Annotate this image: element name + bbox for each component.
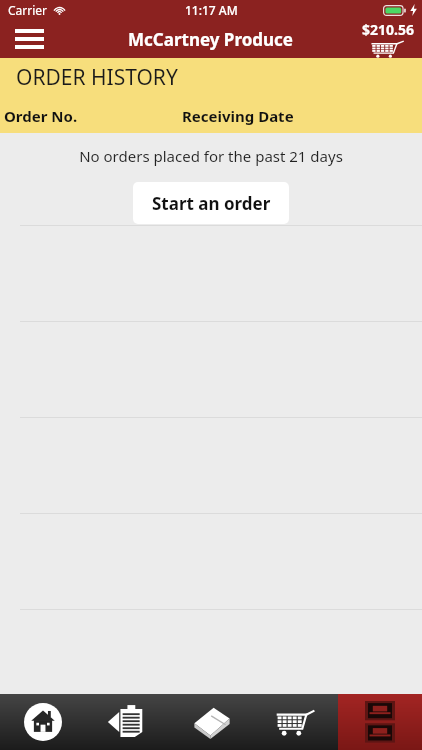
button[interactable]: Orders <box>85 694 170 750</box>
staticText: Order No. <box>4 106 78 126</box>
button[interactable]: Cart <box>254 694 338 750</box>
staticText: Carrier <box>8 2 48 18</box>
button[interactable]: Menu <box>0 20 58 58</box>
staticText: No orders placed for the past 21 days <box>79 146 343 166</box>
button[interactable]: Home <box>0 694 85 750</box>
staticText: $210.56 <box>362 20 414 39</box>
staticText: 11:17 AM <box>185 2 238 18</box>
button[interactable]: Account <box>338 694 422 750</box>
staticText: McCartney Produce <box>128 28 294 51</box>
staticText: Receiving Date <box>182 106 294 126</box>
button[interactable]: Cart total $210.56 <box>354 20 422 58</box>
staticText: ORDER HISTORY <box>16 63 178 92</box>
button[interactable]: Catalog <box>170 694 254 750</box>
button[interactable]: Start an order <box>133 182 289 224</box>
staticText: Start an order <box>152 192 271 215</box>
